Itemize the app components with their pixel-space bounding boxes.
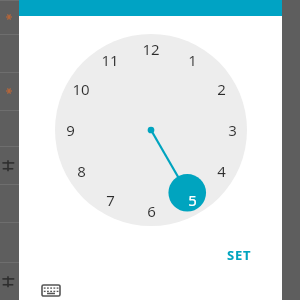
staticText: SET xyxy=(227,246,252,264)
button[interactable]: 12 xyxy=(137,35,165,63)
staticText: 6 xyxy=(147,201,156,221)
staticText: 5 xyxy=(188,190,197,210)
staticText: 3 xyxy=(228,120,237,140)
button[interactable]: 9 xyxy=(56,116,84,144)
staticText: 8 xyxy=(77,161,86,181)
button[interactable]: 2 xyxy=(207,75,235,103)
button[interactable]: 3 xyxy=(218,116,246,144)
staticText: 4 xyxy=(217,161,226,181)
staticText: 10 xyxy=(72,79,90,99)
staticText: 9 xyxy=(66,120,75,140)
button[interactable]: 11 xyxy=(96,46,124,74)
button[interactable]: 8 xyxy=(67,157,95,185)
staticText: 11 xyxy=(101,50,119,70)
button[interactable]: 1 xyxy=(178,46,206,74)
button[interactable]: 5 xyxy=(178,186,206,214)
button[interactable]: 6 xyxy=(137,197,165,225)
button[interactable]: 10 xyxy=(67,75,95,103)
button[interactable]: 4 xyxy=(207,157,235,185)
button[interactable]: 7 xyxy=(96,186,124,214)
staticText: 7 xyxy=(106,190,115,210)
staticText: 12 xyxy=(142,39,160,59)
staticText: 2 xyxy=(217,79,226,99)
staticText: 1 xyxy=(188,50,197,70)
button[interactable]: SET xyxy=(213,238,266,272)
button[interactable]: Switch to text input xyxy=(39,280,63,300)
